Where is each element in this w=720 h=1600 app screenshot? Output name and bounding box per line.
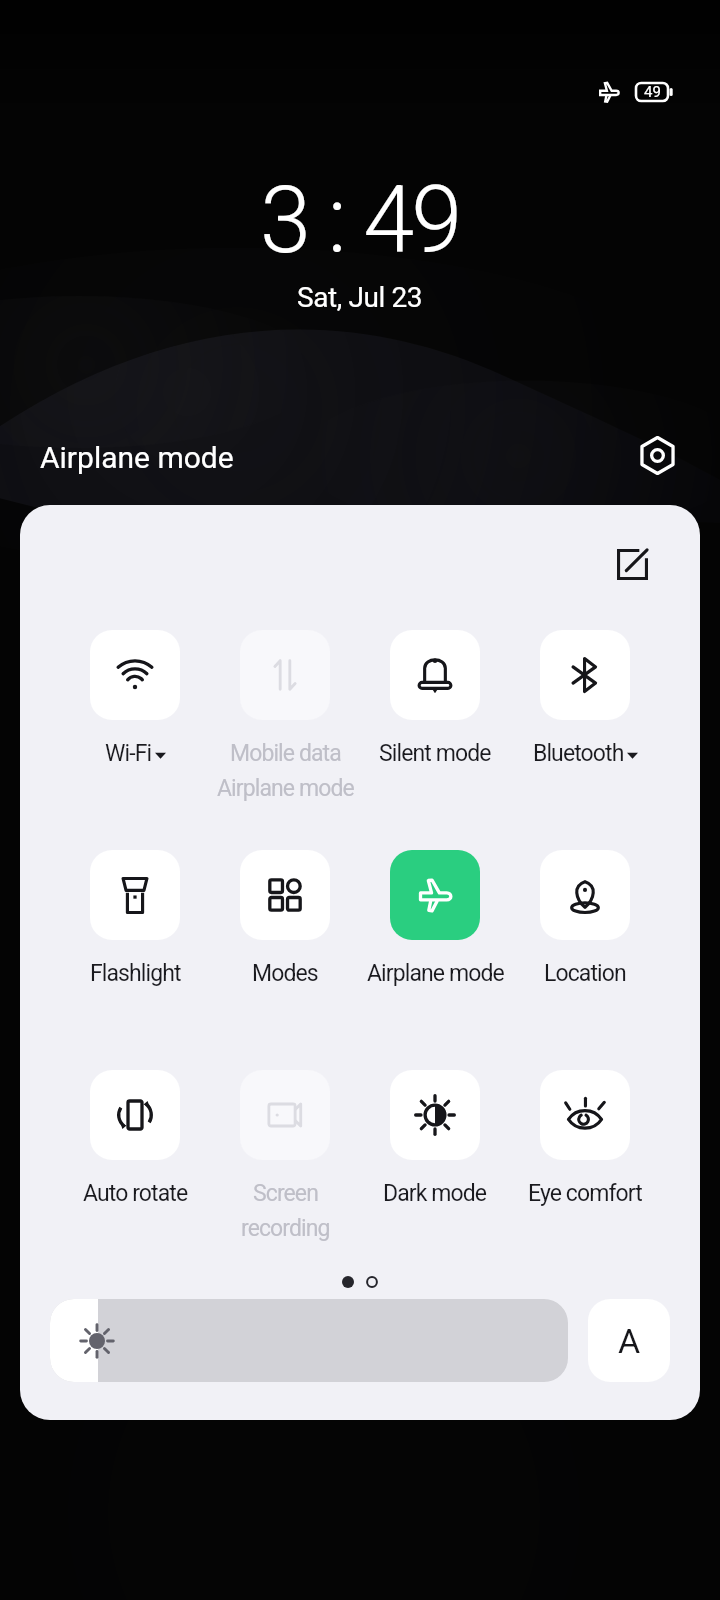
staticText: Screen: [253, 1180, 318, 1207]
staticText: 3 : 49: [260, 167, 460, 275]
button[interactable]: Dark mode: [390, 1070, 480, 1160]
button[interactable]: Mobile data: [240, 630, 330, 720]
staticText: 49: [644, 83, 661, 101]
button[interactable]: Auto brightness: [588, 1299, 670, 1382]
staticText: Wi-Fi: [105, 740, 152, 767]
staticText: Dark mode: [383, 1180, 487, 1207]
staticText: Flashlight: [90, 960, 181, 987]
button[interactable]: Auto rotate: [90, 1070, 180, 1160]
staticText: Bluetooth: [533, 740, 624, 767]
staticText: Silent mode: [379, 740, 491, 767]
staticText: A: [618, 1321, 641, 1361]
button[interactable]: Silent mode: [390, 630, 480, 720]
button[interactable]: Brightness: [50, 1299, 568, 1382]
staticText: Airplane mode: [217, 775, 354, 802]
button[interactable]: Modes: [240, 850, 330, 940]
button[interactable]: Settings: [634, 432, 680, 478]
button[interactable]: Bluetooth: [540, 630, 630, 720]
button[interactable]: Flashlight: [90, 850, 180, 940]
staticText: Modes: [252, 960, 318, 987]
staticText: Location: [544, 960, 626, 987]
staticText: Airplane mode: [367, 960, 504, 987]
staticText: Mobile data: [230, 740, 341, 767]
staticText: Auto rotate: [83, 1180, 188, 1207]
staticText: Airplane mode: [40, 440, 234, 475]
button[interactable]: Eye comfort: [540, 1070, 630, 1160]
staticText: Sat, Jul 23: [297, 281, 423, 314]
staticText: recording: [241, 1215, 330, 1242]
button[interactable]: Location: [540, 850, 630, 940]
staticText: Eye comfort: [528, 1180, 642, 1207]
button[interactable]: Screen recording: [240, 1070, 330, 1160]
button[interactable]: Wi-Fi: [90, 630, 180, 720]
button[interactable]: Edit: [607, 539, 657, 589]
button[interactable]: Airplane mode: [390, 850, 480, 940]
